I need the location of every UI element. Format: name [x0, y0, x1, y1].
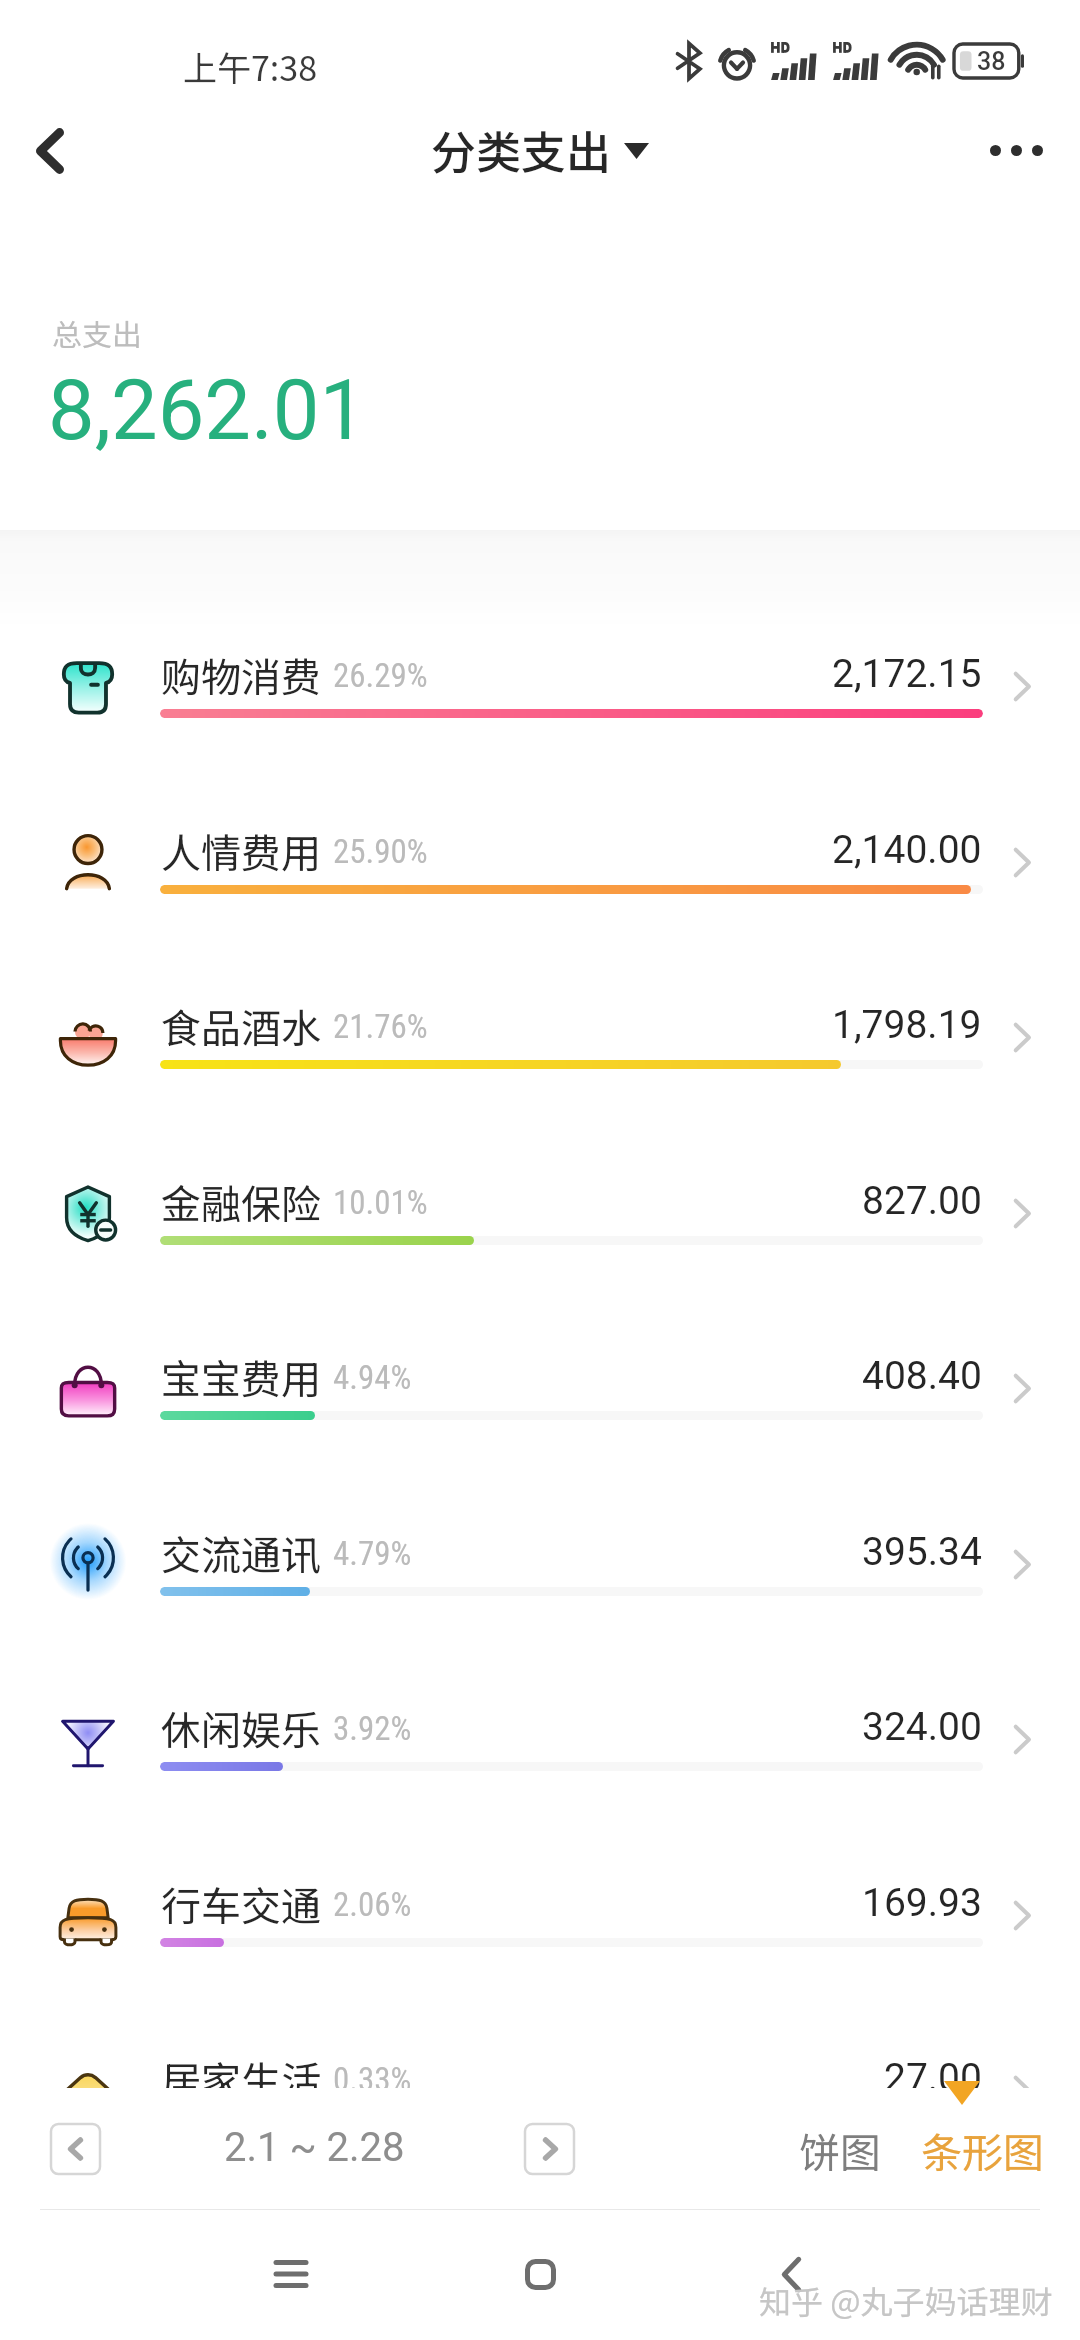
staticText: 408.40: [862, 1353, 982, 1399]
staticText: 2.06%: [333, 1885, 412, 1924]
button[interactable]: 宝宝费用: [0, 1303, 1080, 1478]
staticText: 交流通讯: [161, 1524, 321, 1582]
staticText: 0.33%: [333, 2060, 412, 2088]
button[interactable]: 食品酒水: [0, 952, 1080, 1127]
staticText: 26.29%: [333, 656, 428, 695]
staticText: 金融保险: [161, 1173, 321, 1231]
staticText: 人情费用: [161, 822, 321, 880]
button[interactable]: 居家生活: [0, 2005, 1080, 2088]
staticText: 21.76%: [333, 1007, 428, 1046]
staticText: 169.93: [862, 1880, 982, 1926]
button[interactable]: Previous period: [51, 2124, 100, 2174]
staticText: 324.00: [862, 1704, 982, 1750]
staticText: 27.00: [884, 2055, 982, 2088]
staticText: 4.94%: [333, 1358, 412, 1397]
staticText: 饼图: [799, 2120, 881, 2179]
staticText: 38: [977, 47, 1006, 76]
button[interactable]: 饼图: [799, 2120, 881, 2179]
button[interactable]: Back: [8, 100, 92, 200]
button[interactable]: 购物消费: [0, 601, 1080, 776]
staticText: 2.1 ~ 2.28: [224, 2124, 405, 2171]
staticText: 总支出: [52, 311, 142, 354]
staticText: 食品酒水: [161, 997, 321, 1055]
staticText: 上午7:38: [183, 42, 318, 91]
staticText: 购物消费: [161, 646, 321, 704]
staticText: 10.01%: [333, 1183, 428, 1222]
staticText: 行车交通: [161, 1875, 321, 1933]
button[interactable]: 条形图: [921, 2120, 1044, 2179]
staticText: 知乎 @丸子妈话理财: [759, 2277, 1053, 2323]
staticText: 居家生活: [161, 2050, 321, 2088]
button[interactable]: More options: [971, 100, 1061, 200]
staticText: 4.79%: [333, 1534, 412, 1573]
staticText: 条形图: [921, 2120, 1044, 2179]
staticText: 25.90%: [333, 832, 428, 871]
staticText: 分类支出: [431, 117, 612, 181]
staticText: 宝宝费用: [161, 1348, 321, 1406]
staticText: 827.00: [862, 1178, 982, 1224]
button[interactable]: Home: [485, 2219, 595, 2329]
staticText: 1,798.19: [832, 1002, 982, 1048]
button[interactable]: Go back: [736, 2219, 846, 2329]
button[interactable]: 金融保险: [0, 1128, 1080, 1303]
staticText: 2,140.00: [832, 827, 982, 873]
button[interactable]: Recent apps: [236, 2219, 346, 2329]
button[interactable]: 分类支出: [425, 118, 665, 182]
staticText: 2,172.15: [832, 651, 982, 697]
button[interactable]: Next period: [525, 2124, 574, 2174]
staticText: 休闲娱乐: [161, 1699, 321, 1757]
staticText: 3.92%: [333, 1709, 412, 1748]
button[interactable]: 人情费用: [0, 777, 1080, 952]
button[interactable]: 行车交通: [0, 1830, 1080, 2005]
staticText: 395.34: [862, 1529, 982, 1575]
button[interactable]: 交流通讯: [0, 1479, 1080, 1654]
button[interactable]: 休闲娱乐: [0, 1654, 1080, 1829]
staticText: 8,262.01: [48, 362, 367, 459]
